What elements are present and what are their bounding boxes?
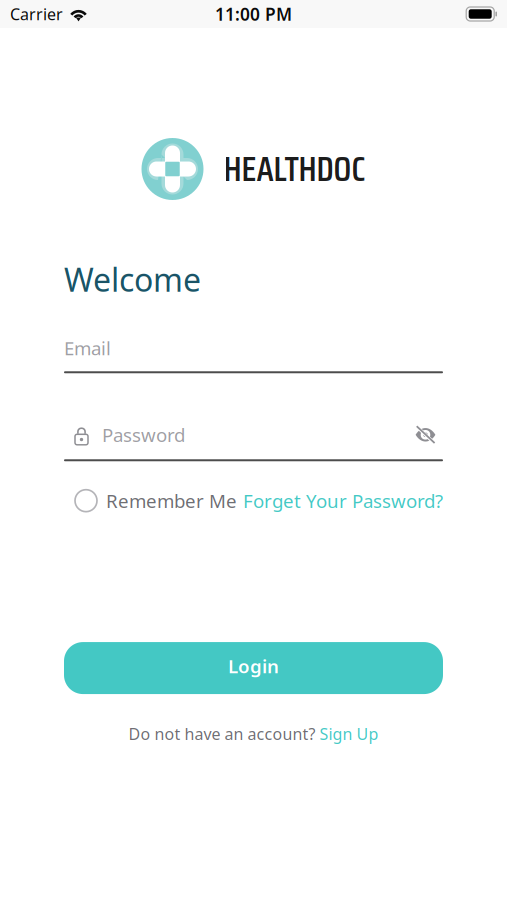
staticText: Carrier (10, 3, 63, 25)
staticText: Remember Me (106, 488, 237, 513)
staticText: Forget Your Password? (243, 488, 443, 513)
staticText: Do not have an account? (128, 723, 315, 744)
button[interactable]: Forget Your Password? (243, 488, 443, 513)
staticText: Password (102, 422, 185, 447)
staticText: HEALTHDOC (223, 142, 365, 196)
staticText: 11:00 PM (215, 2, 292, 25)
staticText: Email (64, 335, 111, 360)
staticText: Login (228, 654, 279, 678)
button[interactable]: Show password (415, 425, 436, 445)
staticText: Sign Up (319, 723, 378, 744)
button[interactable]: Remember Me (64, 488, 237, 513)
button[interactable]: Do not have an account? (128, 723, 378, 744)
staticText: Welcome (64, 258, 201, 300)
button[interactable]: Login (64, 642, 443, 694)
